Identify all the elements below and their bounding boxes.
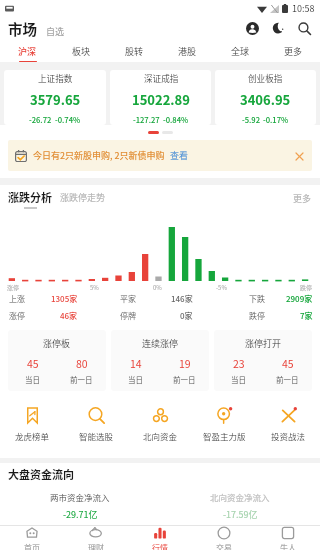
staticText: -0.74% (55, 114, 81, 125)
staticText: -127.27 (133, 114, 160, 125)
button[interactable]: 上证指数 (4, 70, 106, 125)
staticText: 投资战法 (271, 430, 306, 442)
staticText: 3579.65 (30, 90, 81, 109)
button[interactable]: 沪深 (0, 40, 54, 62)
staticText: 当日 (25, 374, 40, 385)
button[interactable]: 交易 (192, 526, 256, 550)
staticText: 连续涨停 (142, 337, 179, 350)
button[interactable]: 智盈主力版 (192, 407, 256, 447)
staticText: 前一日 (70, 374, 93, 385)
staticText: 智盈主力版 (203, 430, 246, 442)
staticText: 两市资金净流入 (50, 491, 110, 503)
staticText: 市场 (8, 18, 37, 39)
staticText: 龙虎榜单 (15, 430, 50, 442)
staticText: 上涨 (9, 293, 25, 304)
button[interactable]: 连续涨停 (111, 330, 209, 391)
staticText: 1305家 (51, 293, 78, 304)
staticText: 45 (282, 356, 294, 371)
staticText: 更多 (293, 192, 312, 205)
staticText: 14 (130, 356, 142, 371)
staticText: 涨跌停走势 (60, 191, 106, 204)
staticText: 19 (179, 356, 191, 371)
staticText: 沪深 (18, 45, 37, 58)
button[interactable]: 深证成指 (110, 70, 211, 125)
button[interactable]: 板块 (54, 40, 108, 62)
staticText: 全球 (231, 45, 250, 58)
staticText: 80 (76, 356, 88, 371)
button[interactable]: 涨停板 (8, 330, 106, 391)
staticText: 跌停 (300, 283, 313, 292)
staticText: 首页 (24, 542, 40, 550)
staticText: 牛人 (280, 542, 296, 550)
button[interactable]: 首页 (0, 526, 64, 550)
staticText: 更多 (284, 45, 303, 58)
staticText: 北向资金净流入 (210, 491, 270, 503)
staticText: 0家 (180, 310, 193, 321)
button[interactable]: 智能选股 (64, 407, 128, 447)
staticText: 15022.89 (132, 90, 190, 109)
button[interactable]: 行情 (128, 526, 192, 550)
staticText: 0% (153, 283, 162, 292)
staticText: -0.17% (263, 114, 289, 125)
staticText: 深证成指 (144, 72, 179, 84)
button[interactable]: 今日有2只新股申购, 2只新债申购 (8, 140, 312, 171)
staticText: 23 (233, 356, 245, 371)
staticText: 涨跌分析 (8, 189, 52, 205)
button[interactable]: Search (294, 18, 314, 38)
staticText: 停牌 (120, 310, 136, 321)
staticText: 涨停打开 (245, 337, 282, 350)
button[interactable]: Account (242, 18, 262, 38)
staticText: -5% (216, 283, 227, 292)
button[interactable]: 投资战法 (256, 407, 320, 447)
staticText: 2909家 (286, 293, 313, 304)
staticText: 港股 (178, 45, 197, 58)
button[interactable]: 创业板指 (215, 70, 316, 125)
staticText: -17.59亿 (223, 508, 258, 521)
staticText: 板块 (72, 45, 91, 58)
staticText: 3406.95 (240, 90, 291, 109)
staticText: 智能选股 (79, 430, 114, 442)
staticText: -26.72 (29, 114, 52, 125)
staticText: 今日有2只新股申购, 2只新债申购 (33, 149, 165, 162)
staticText: 下跌 (249, 293, 265, 304)
staticText: 前一日 (173, 374, 196, 385)
button[interactable]: Night mode (268, 18, 288, 38)
staticText: -5.92 (242, 114, 260, 125)
staticText: 自选 (46, 25, 65, 38)
staticText: 10:58 (292, 2, 315, 15)
staticText: 涨停 (7, 283, 20, 292)
staticText: 涨停 (9, 310, 25, 321)
staticText: 46家 (60, 310, 78, 321)
staticText: 创业板指 (248, 72, 283, 84)
button[interactable]: 理财 (64, 526, 128, 550)
button[interactable]: 牛人 (256, 526, 320, 550)
staticText: 行情 (152, 542, 168, 550)
button[interactable]: Close (292, 149, 306, 163)
staticText: 股转 (125, 45, 144, 58)
button[interactable]: 龙虎榜单 (0, 407, 64, 447)
staticText: 平家 (120, 293, 136, 304)
staticText: 5% (90, 283, 99, 292)
staticText: 7家 (300, 310, 313, 321)
staticText: 理财 (88, 542, 104, 550)
staticText: 大盘资金流向 (8, 466, 74, 482)
button[interactable]: 涨停打开 (214, 330, 312, 391)
staticText: 当日 (231, 374, 246, 385)
staticText: 查看 (170, 149, 189, 162)
button[interactable]: 股转 (108, 40, 161, 62)
staticText: 上证指数 (38, 72, 73, 84)
staticText: 交易 (216, 542, 232, 550)
staticText: 涨停板 (43, 337, 71, 350)
staticText: 146家 (171, 293, 193, 304)
staticText: 跌停 (249, 310, 265, 321)
staticText: -29.71亿 (63, 508, 98, 521)
staticText: 当日 (128, 374, 143, 385)
staticText: 45 (27, 356, 39, 371)
staticText: 北向资金 (143, 430, 178, 442)
button[interactable]: 全球 (214, 40, 267, 62)
staticText: -0.84% (163, 114, 189, 125)
button[interactable]: 更多 (267, 40, 320, 62)
button[interactable]: 北向资金 (128, 407, 192, 447)
button[interactable]: 港股 (161, 40, 214, 62)
staticText: 前一日 (276, 374, 299, 385)
